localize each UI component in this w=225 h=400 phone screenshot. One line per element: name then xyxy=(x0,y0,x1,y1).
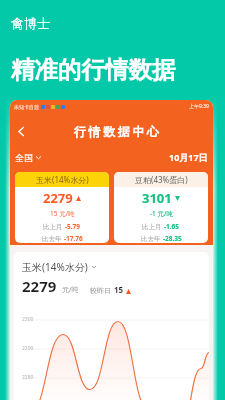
staticText: 3101 xyxy=(142,189,172,207)
staticText: 玉米(14%水分) xyxy=(36,174,89,185)
staticText: 比上月 xyxy=(142,222,164,231)
staticText: -1.65 xyxy=(164,222,180,231)
staticText: 15 xyxy=(114,284,124,295)
staticText: -1 元/吨 xyxy=(150,209,173,218)
staticText: 2280 xyxy=(22,374,34,381)
button[interactable]: 玉米(14%水分) xyxy=(15,172,109,243)
staticText: 10月17日 xyxy=(169,151,208,163)
staticText: 元/吨 xyxy=(62,285,79,295)
staticText: 全国 xyxy=(15,152,33,163)
staticText: 2279 xyxy=(22,276,57,296)
staticText: 2300 xyxy=(22,316,34,323)
staticText: 比去年 xyxy=(141,234,163,243)
staticText: 15 元/吨 xyxy=(50,209,75,218)
staticText: 上午9:39 xyxy=(189,103,209,110)
staticText: -5.79 xyxy=(65,222,81,231)
staticText: 玉米(14%水分) xyxy=(22,260,88,274)
staticText: 未知卡自营 xyxy=(14,104,39,110)
button[interactable]: Back xyxy=(13,123,29,139)
staticText: 2279 xyxy=(43,189,73,207)
staticText: -17.76 xyxy=(64,234,83,243)
button[interactable]: 全国 xyxy=(15,152,41,163)
staticText: 行情数据中心 xyxy=(74,124,162,139)
button[interactable]: 豆粕(43%蛋白) xyxy=(114,172,208,243)
staticText: -28.35 xyxy=(163,234,182,243)
staticText: 较昨日 xyxy=(90,286,111,295)
staticText: 比上月 xyxy=(43,222,65,231)
staticText: 豆粕(43%蛋白) xyxy=(135,174,188,185)
staticText: 精准的行情数据 xyxy=(11,55,176,85)
staticText: 禽博士 xyxy=(11,15,50,31)
staticText: 比去年 xyxy=(42,234,64,243)
staticText: 2290 xyxy=(22,345,34,352)
